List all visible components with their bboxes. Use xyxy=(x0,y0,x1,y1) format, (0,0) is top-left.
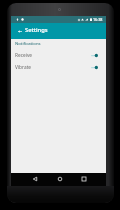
button[interactable]: Vibrate xyxy=(11,61,106,73)
button[interactable]: Home xyxy=(54,173,66,185)
button[interactable]: Receive xyxy=(11,49,106,61)
button[interactable]: Recent apps xyxy=(78,173,90,185)
button[interactable]: Navigate up xyxy=(14,26,25,37)
staticText: Notifications xyxy=(15,41,41,47)
staticText: Vibrate xyxy=(15,64,32,71)
button[interactable]: Back xyxy=(29,173,41,185)
staticText: 16:38 xyxy=(93,17,103,22)
staticText: Receive xyxy=(15,52,33,59)
staticText: Settings xyxy=(25,26,48,34)
